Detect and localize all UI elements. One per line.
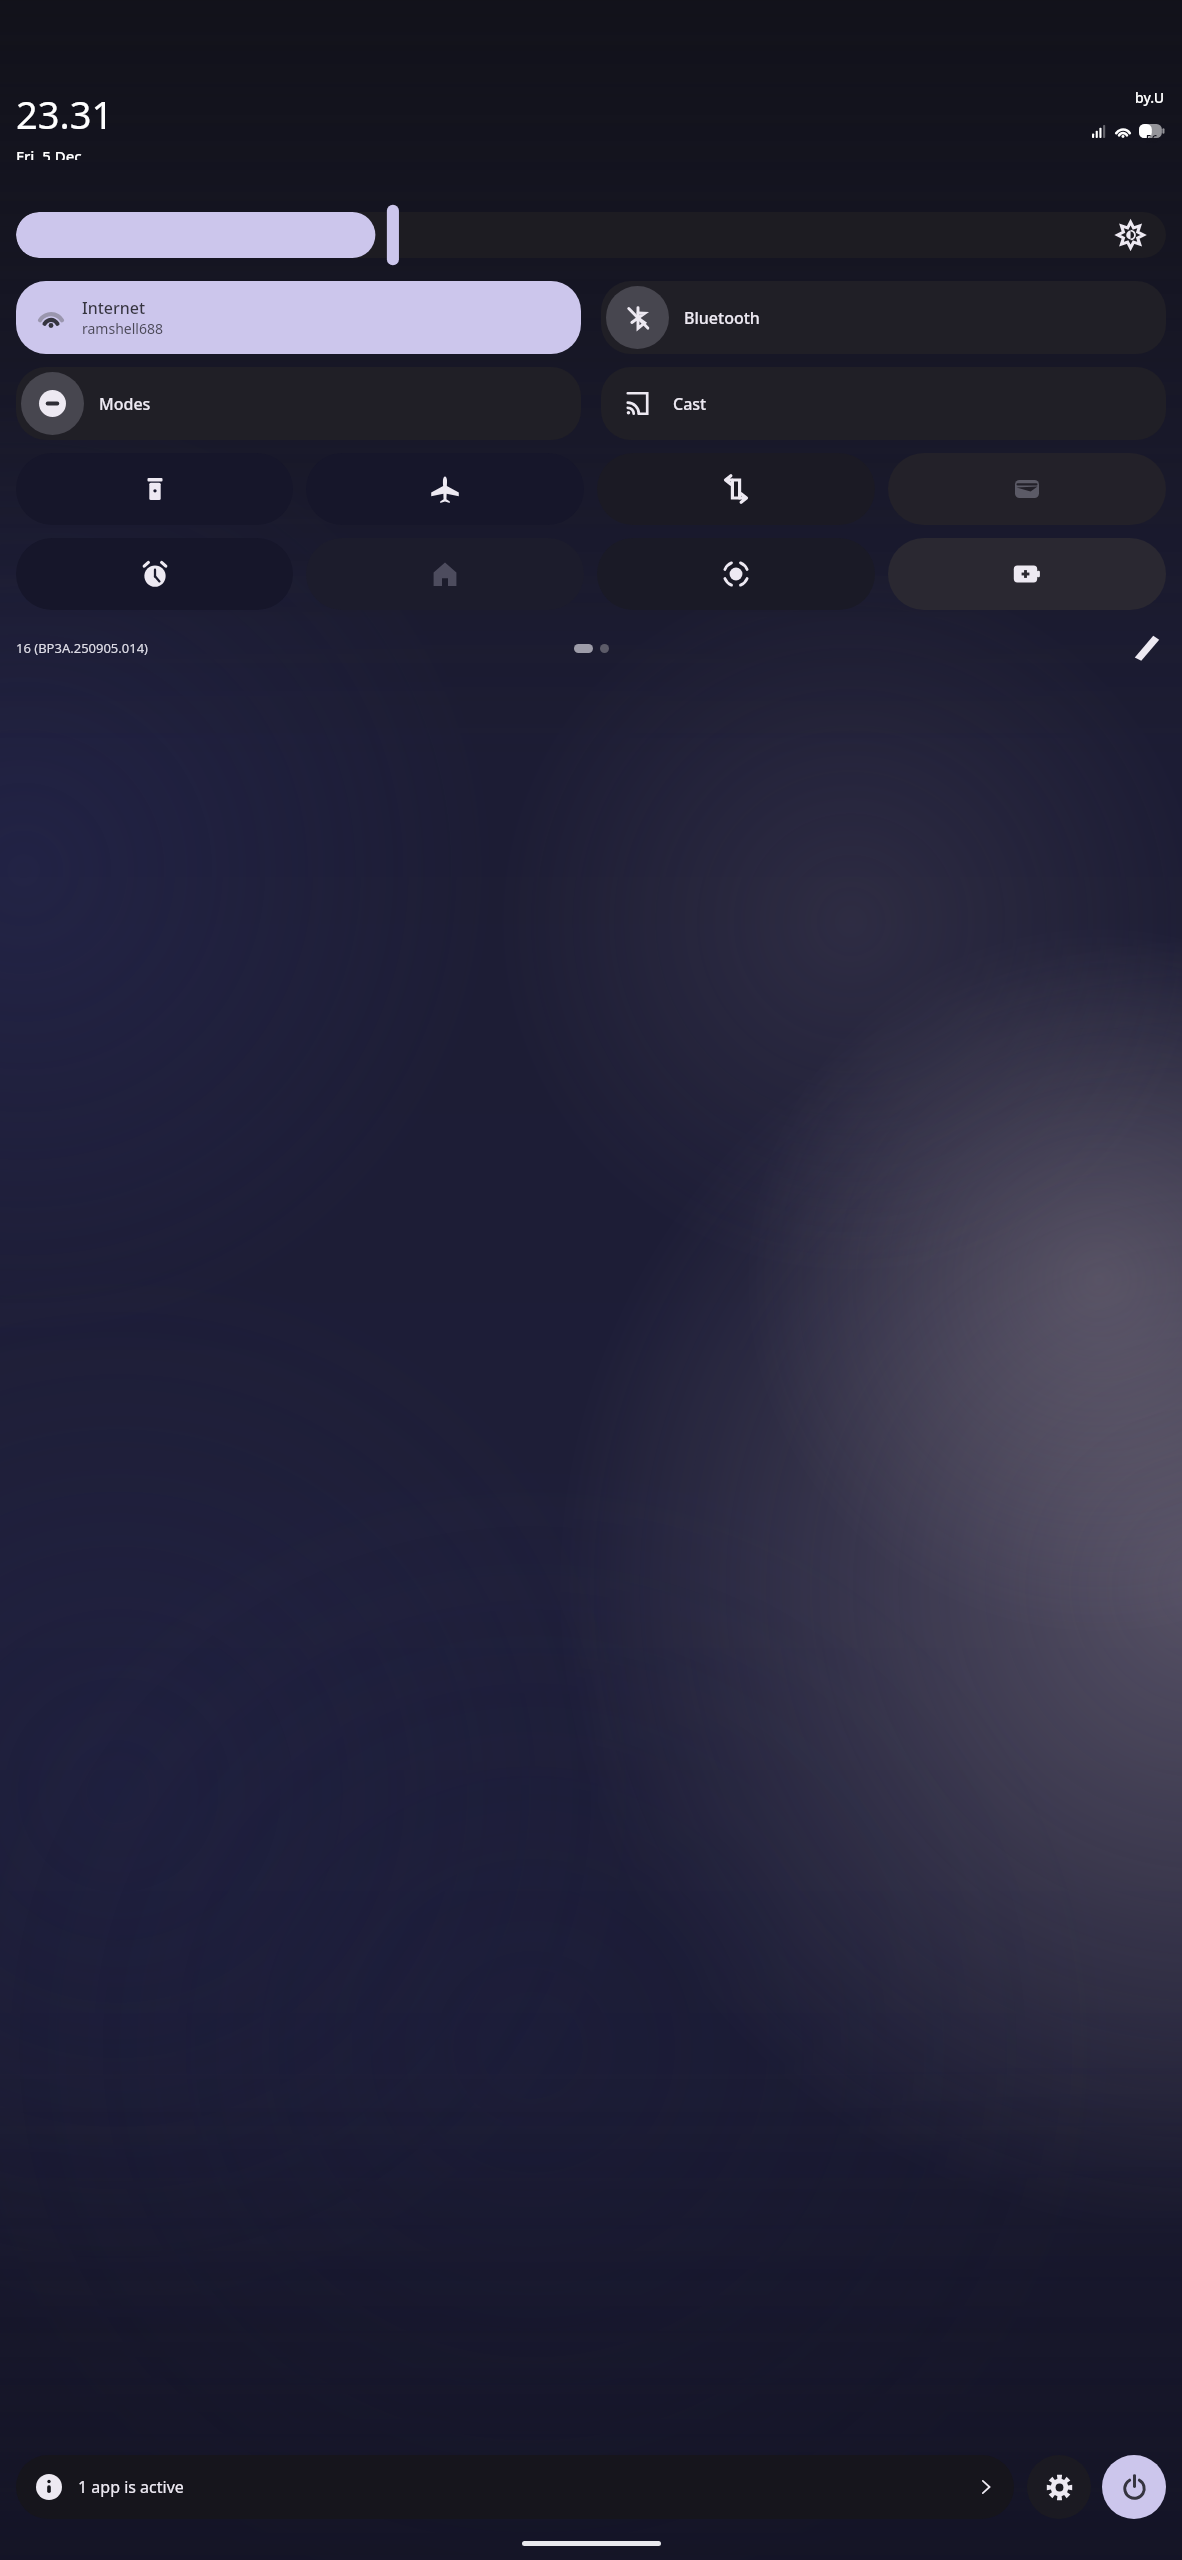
staticText: Internet bbox=[82, 297, 146, 319]
staticText: 1 app is active bbox=[78, 2476, 184, 2498]
staticText: ramshell688 bbox=[82, 319, 163, 338]
staticText: Fri, 5 Dec bbox=[16, 146, 82, 160]
button[interactable]: Power bbox=[1102, 2455, 1166, 2519]
button[interactable]: 1 app is active bbox=[16, 2455, 1014, 2519]
staticText: Bluetooth bbox=[684, 307, 760, 329]
button[interactable]: Bluetooth bbox=[601, 281, 1166, 354]
staticText: 23.31 bbox=[16, 88, 114, 140]
button[interactable]: Flashlight bbox=[16, 453, 293, 525]
button[interactable]: Home bbox=[306, 538, 584, 610]
staticText: 16 (BP3A.250905.014) bbox=[16, 639, 149, 657]
button[interactable]: Edit tiles bbox=[1128, 629, 1166, 667]
button[interactable]: Page 1 bbox=[574, 644, 593, 653]
staticText: 56 bbox=[1146, 132, 1158, 146]
button[interactable]: Settings bbox=[1027, 2455, 1091, 2519]
button[interactable]: Airplane mode bbox=[306, 453, 584, 525]
staticText: Cast bbox=[673, 393, 707, 415]
button[interactable]: Battery Saver bbox=[888, 538, 1166, 610]
button[interactable]: Page 2 bbox=[600, 644, 609, 653]
button[interactable]: Wallet bbox=[888, 453, 1166, 525]
button[interactable]: Internet bbox=[16, 281, 581, 354]
staticText: Modes bbox=[99, 393, 151, 415]
staticText: by.U bbox=[1135, 88, 1165, 107]
button[interactable]: Auto-rotate bbox=[597, 453, 875, 525]
button[interactable]: Cast bbox=[601, 367, 1166, 440]
button[interactable]: Modes bbox=[16, 367, 581, 440]
button[interactable]: Scan bbox=[597, 538, 875, 610]
button[interactable]: Brightness bbox=[16, 212, 1166, 258]
button[interactable]: Alarm bbox=[16, 538, 293, 610]
